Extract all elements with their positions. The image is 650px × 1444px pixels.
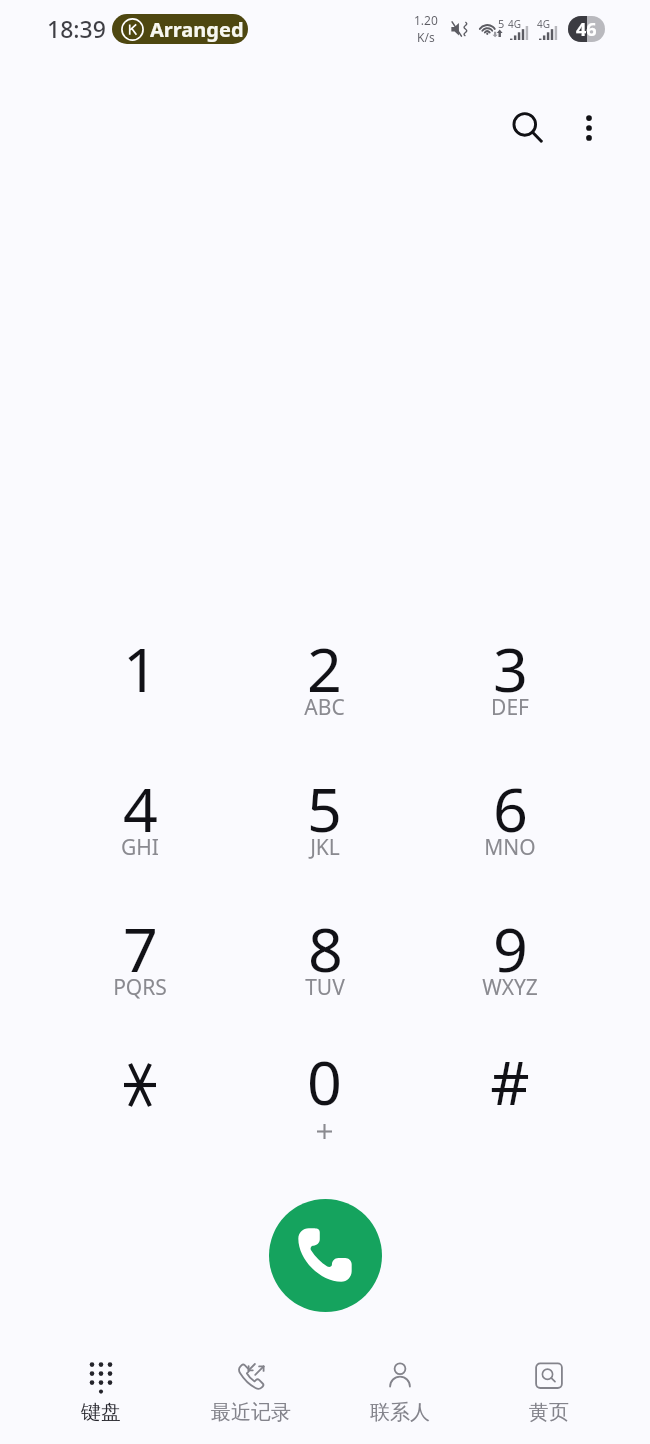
staticText: PQRS xyxy=(113,973,167,1002)
button[interactable]: 9 xyxy=(417,907,602,1047)
staticText: 7 xyxy=(123,907,158,973)
staticText: 9 xyxy=(493,907,528,973)
staticText: 键盘 xyxy=(81,1400,121,1425)
button[interactable]: 0 xyxy=(232,1047,417,1187)
button[interactable]: 联系人 xyxy=(325,1344,475,1444)
staticText: GHI xyxy=(121,833,159,862)
button[interactable]: 5 xyxy=(232,767,417,907)
staticText: MNO xyxy=(484,833,536,862)
staticText: 0 xyxy=(307,1040,342,1106)
staticText: 5 xyxy=(498,16,505,31)
staticText: 18:39 xyxy=(47,13,106,44)
staticText: K/s xyxy=(417,29,435,45)
staticText: 4 xyxy=(123,767,158,833)
button[interactable]: More options xyxy=(561,100,617,156)
staticText: 4G xyxy=(508,17,521,31)
button[interactable]: star xyxy=(48,1047,232,1187)
button[interactable]: 2 xyxy=(232,627,417,767)
staticText: 1.20 xyxy=(414,12,438,28)
staticText: TUV xyxy=(305,973,345,1002)
staticText: 黄页 xyxy=(529,1400,569,1425)
button[interactable]: 7 xyxy=(48,907,232,1047)
button[interactable]: Call xyxy=(269,1199,382,1312)
button[interactable]: 6 xyxy=(417,767,602,907)
button[interactable]: 4 xyxy=(48,767,232,907)
button[interactable]: 键盘 xyxy=(26,1344,176,1444)
staticText: 1 xyxy=(123,627,158,693)
staticText: 3 xyxy=(493,627,528,693)
button[interactable]: 黄页 xyxy=(474,1344,624,1444)
button[interactable]: 3 xyxy=(417,627,602,767)
staticText: ABC xyxy=(304,693,345,722)
staticText: 联系人 xyxy=(370,1400,430,1425)
staticText: DEF xyxy=(491,693,529,722)
staticText: # xyxy=(490,1040,530,1106)
staticText: JKL xyxy=(310,833,340,862)
staticText: 2 xyxy=(307,627,342,693)
staticText: 8 xyxy=(308,907,343,973)
staticText: Arranged xyxy=(150,16,244,43)
button[interactable]: pound xyxy=(417,1047,602,1187)
staticText: 5 xyxy=(307,767,342,833)
button[interactable]: Search xyxy=(500,100,556,156)
staticText: 4G xyxy=(537,17,550,31)
button[interactable]: 1 xyxy=(48,627,232,767)
staticText: 最近记录 xyxy=(211,1400,291,1425)
button[interactable]: 8 xyxy=(232,907,417,1047)
staticText: WXYZ xyxy=(482,973,538,1002)
staticText: 6 xyxy=(493,767,528,833)
staticText: 46 xyxy=(576,17,597,42)
button[interactable]: 最近记录 xyxy=(176,1344,326,1444)
